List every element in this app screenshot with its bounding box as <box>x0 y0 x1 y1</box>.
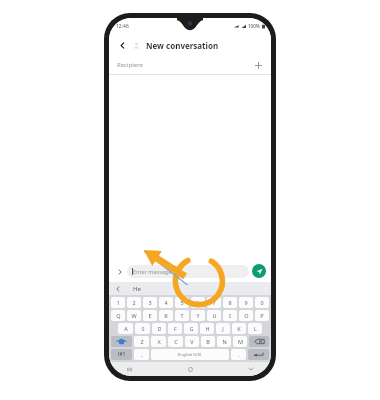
button[interactable]: Contact <box>130 39 142 51</box>
staticText: W <box>131 312 137 319</box>
button[interactable]: A <box>118 323 133 334</box>
staticText: 0 <box>260 299 264 306</box>
staticText: 9 <box>244 299 248 306</box>
button[interactable]: R <box>159 310 173 321</box>
button[interactable]: J <box>216 323 230 334</box>
staticText: I <box>229 312 231 319</box>
staticText: A <box>124 325 128 332</box>
button[interactable]: E <box>143 310 157 321</box>
staticText: 8 <box>228 299 232 306</box>
button[interactable]: Enter <box>248 349 269 360</box>
button[interactable]: U <box>207 310 221 321</box>
staticText: B <box>206 338 210 345</box>
button[interactable]: W <box>127 310 141 321</box>
staticText: 5 <box>180 299 184 306</box>
staticText: 3 <box>148 299 152 306</box>
button[interactable]: Add recipient <box>252 59 264 71</box>
button[interactable]: B <box>201 336 215 347</box>
button[interactable]: S <box>135 323 150 334</box>
staticText: Recipient <box>117 61 252 69</box>
button[interactable]: He <box>133 285 141 293</box>
button[interactable]: Hide keyboard <box>245 363 257 375</box>
button[interactable]: C <box>168 336 183 347</box>
button[interactable]: N <box>217 336 231 347</box>
button[interactable]: Recents <box>123 363 135 375</box>
staticText: M <box>238 338 243 345</box>
button[interactable]: Z <box>134 336 149 347</box>
staticText: K <box>237 325 241 332</box>
staticText: R <box>164 312 168 319</box>
staticText: . <box>238 351 240 358</box>
button[interactable]: T <box>175 310 189 321</box>
button[interactable]: Send <box>252 264 266 278</box>
staticText: D <box>157 325 162 332</box>
button[interactable]: H <box>200 323 214 334</box>
button[interactable]: Home <box>184 363 196 375</box>
button[interactable]: Shift <box>111 336 132 347</box>
button[interactable]: 3 <box>143 297 157 308</box>
button[interactable]: English (US) <box>151 349 229 360</box>
staticText: J <box>222 325 224 332</box>
button[interactable]: 9 <box>239 297 253 308</box>
staticText: 7 <box>212 299 216 306</box>
button[interactable]: . <box>231 349 246 360</box>
button[interactable]: !#1 <box>111 349 132 360</box>
button[interactable]: Enter message <box>127 265 249 278</box>
button[interactable]: 4 <box>159 297 173 308</box>
staticText: T <box>180 312 184 319</box>
staticText: X <box>157 338 161 345</box>
button[interactable]: M <box>233 336 247 347</box>
button[interactable]: P <box>255 310 269 321</box>
staticText: !#1 <box>118 351 126 358</box>
button[interactable]: K <box>232 323 246 334</box>
staticText: S <box>141 325 145 332</box>
button[interactable]: V <box>185 336 199 347</box>
button[interactable]: L <box>248 323 262 334</box>
button[interactable]: O <box>239 310 253 321</box>
button[interactable]: Expand <box>114 266 125 277</box>
button[interactable]: , <box>134 349 149 360</box>
button[interactable]: Q <box>111 310 125 321</box>
button[interactable]: 7 <box>207 297 221 308</box>
staticText: 12:46 <box>116 23 129 30</box>
button[interactable]: I <box>223 310 237 321</box>
staticText: Enter message <box>133 268 172 275</box>
button[interactable]: Previous suggestions <box>112 283 123 294</box>
staticText: Z <box>140 338 144 345</box>
button[interactable]: 1 <box>111 297 125 308</box>
staticText: P <box>260 312 264 319</box>
button[interactable]: 8 <box>223 297 237 308</box>
staticText: Q <box>116 312 121 319</box>
button[interactable]: 5 <box>175 297 189 308</box>
staticText: New conversation <box>146 40 219 51</box>
staticText: English (US) <box>178 352 202 358</box>
staticText: 1 <box>116 299 120 306</box>
button[interactable]: Recipient <box>109 56 271 74</box>
staticText: Y <box>196 312 200 319</box>
staticText: L <box>254 325 257 332</box>
staticText: He <box>133 285 141 293</box>
button[interactable]: 0 <box>255 297 269 308</box>
button[interactable]: 6 <box>191 297 205 308</box>
staticText: 6 <box>196 299 200 306</box>
staticText: , <box>141 351 143 358</box>
staticText: 2 <box>132 299 136 306</box>
button[interactable]: G <box>184 323 198 334</box>
staticText: V <box>190 338 194 345</box>
staticText: C <box>174 338 178 345</box>
button[interactable]: Backspace <box>249 336 269 347</box>
staticText: F <box>174 325 177 332</box>
button[interactable]: Back <box>116 39 128 51</box>
staticText: U <box>212 312 217 319</box>
button[interactable]: D <box>152 323 166 334</box>
staticText: 100% <box>248 23 260 29</box>
staticText: 4 <box>164 299 168 306</box>
staticText: E <box>148 312 152 319</box>
button[interactable]: Y <box>191 310 205 321</box>
button[interactable]: 2 <box>127 297 141 308</box>
staticText: O <box>244 312 249 319</box>
staticText: N <box>222 338 227 345</box>
button[interactable]: X <box>151 336 166 347</box>
staticText: G <box>189 325 194 332</box>
button[interactable]: F <box>168 323 182 334</box>
